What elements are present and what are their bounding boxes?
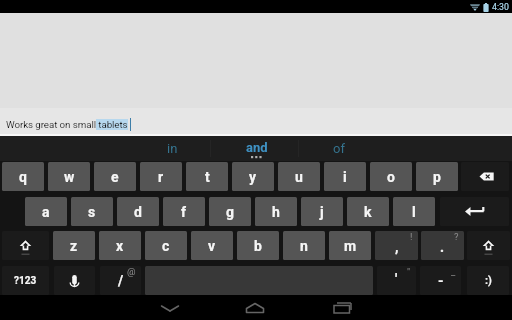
staticText: y <box>249 169 257 185</box>
staticText: / <box>118 273 124 289</box>
staticText: - <box>438 273 444 289</box>
button[interactable]: in <box>133 136 212 161</box>
button[interactable]: b <box>237 231 279 260</box>
button[interactable]: Recent apps <box>319 295 365 320</box>
button[interactable]: :) <box>467 266 509 295</box>
button[interactable]: f <box>163 197 205 226</box>
button[interactable]: d <box>117 197 159 226</box>
staticText: x <box>116 238 124 254</box>
button[interactable]: Shift <box>2 231 49 260</box>
staticText: s <box>88 204 96 220</box>
button[interactable]: l <box>393 197 435 226</box>
staticText: 4:30 <box>492 2 509 12</box>
button[interactable]: w <box>48 162 90 191</box>
staticText: h <box>272 204 280 220</box>
staticText: j <box>320 204 324 220</box>
staticText: n <box>300 238 308 254</box>
button[interactable]: n <box>283 231 325 260</box>
button[interactable]: k <box>347 197 389 226</box>
staticText: g <box>226 204 234 220</box>
button[interactable]: q <box>2 162 44 191</box>
button[interactable]: c <box>145 231 187 260</box>
staticText: b <box>254 238 262 254</box>
staticText: u <box>295 169 303 185</box>
button[interactable]: Shift <box>467 231 510 260</box>
button[interactable]: h <box>255 197 297 226</box>
button[interactable]: y <box>232 162 274 191</box>
staticText: c <box>162 238 170 254</box>
staticText: ' <box>395 271 398 287</box>
button[interactable]: i <box>324 162 366 191</box>
staticText: v <box>208 238 216 254</box>
button[interactable]: t <box>186 162 228 191</box>
button[interactable]: Enter <box>440 197 509 226</box>
staticText: and <box>246 140 268 155</box>
staticText: . <box>440 239 445 255</box>
staticText: i <box>343 169 347 185</box>
staticText: :) <box>485 274 492 287</box>
staticText: p <box>433 169 441 185</box>
staticText: ! <box>410 231 413 242</box>
button[interactable]: v <box>191 231 233 260</box>
staticText: r <box>158 169 164 185</box>
button[interactable]: - <box>420 266 461 295</box>
button[interactable]: , <box>375 231 418 260</box>
staticText: z <box>70 238 78 254</box>
button[interactable]: x <box>99 231 141 260</box>
staticText: ?123 <box>14 275 37 287</box>
staticText: k <box>364 204 372 220</box>
staticText: , <box>395 239 399 255</box>
staticText: t <box>205 169 210 185</box>
button[interactable]: ' <box>377 266 416 295</box>
button[interactable]: . <box>421 231 464 260</box>
button[interactable]: p <box>416 162 458 191</box>
staticText: _ <box>451 266 456 277</box>
staticText: d <box>134 204 142 220</box>
button[interactable]: of <box>299 136 378 161</box>
button[interactable]: e <box>94 162 136 191</box>
button[interactable]: Backspace <box>461 162 509 191</box>
staticText: of <box>333 141 345 156</box>
button[interactable]: o <box>370 162 412 191</box>
button[interactable]: u <box>278 162 320 191</box>
staticText: ? <box>454 231 459 242</box>
button[interactable]: j <box>301 197 343 226</box>
button[interactable]: ?123 <box>2 266 49 295</box>
button[interactable]: m <box>329 231 371 260</box>
staticText: o <box>387 169 395 185</box>
button[interactable]: r <box>140 162 182 191</box>
button[interactable]: z <box>53 231 95 260</box>
button[interactable]: Hide keyboard <box>147 295 193 320</box>
staticText: Works great on small <box>6 119 96 130</box>
staticText: tablets <box>96 119 128 130</box>
staticText: w <box>64 169 75 185</box>
button[interactable]: / <box>100 266 141 295</box>
staticText: f <box>181 204 187 220</box>
button[interactable]: a <box>25 197 67 226</box>
staticText: l <box>412 204 416 220</box>
staticText: e <box>111 169 119 185</box>
staticText: q <box>19 169 27 185</box>
button[interactable]: s <box>71 197 113 226</box>
button[interactable]: Home <box>232 295 278 320</box>
staticText: a <box>42 204 50 220</box>
button[interactable]: Voice input <box>54 266 95 295</box>
staticText: in <box>167 141 178 156</box>
staticText: " <box>407 266 411 277</box>
staticText: m <box>344 238 357 254</box>
button[interactable]: and <box>213 136 300 161</box>
button[interactable]: g <box>209 197 251 226</box>
staticText: @ <box>127 266 136 277</box>
